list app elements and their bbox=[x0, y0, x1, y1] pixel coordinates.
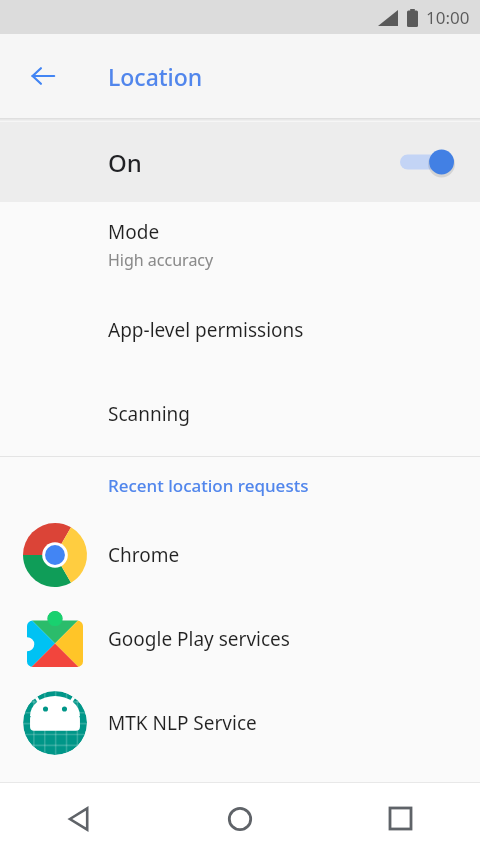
staticText: MTK NLP Service bbox=[108, 710, 257, 736]
staticText: High accuracy bbox=[108, 249, 214, 271]
button[interactable]: Home bbox=[160, 783, 320, 854]
button[interactable]: Mode bbox=[0, 202, 480, 288]
button[interactable]: Recent apps bbox=[320, 783, 480, 854]
staticText: Chrome bbox=[108, 542, 180, 568]
staticText: Google Play services bbox=[108, 626, 290, 652]
button[interactable]: Back bbox=[0, 783, 160, 854]
button[interactable]: Chrome bbox=[0, 513, 480, 597]
button[interactable]: Google Play services bbox=[0, 597, 480, 681]
button[interactable]: On bbox=[0, 122, 480, 202]
button[interactable]: MTK NLP Service bbox=[0, 681, 480, 765]
button[interactable]: Scanning bbox=[0, 372, 480, 456]
staticText: Recent location requests bbox=[108, 474, 309, 497]
staticText: Location bbox=[108, 61, 203, 92]
staticText: Mode bbox=[108, 219, 160, 245]
staticText: On bbox=[108, 146, 142, 179]
staticText: App-level permissions bbox=[108, 317, 304, 343]
button[interactable]: App-level permissions bbox=[0, 288, 480, 372]
button[interactable]: Back bbox=[19, 52, 67, 100]
staticText: Scanning bbox=[108, 401, 191, 427]
staticText: 10:00 bbox=[426, 6, 470, 29]
